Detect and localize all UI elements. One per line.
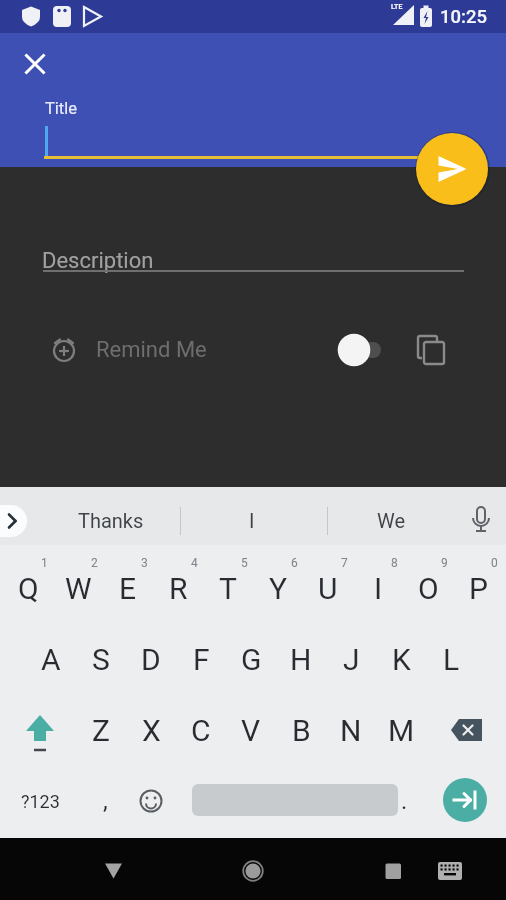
button[interactable]: Q: [3, 553, 53, 623]
button[interactable]: R: [153, 553, 203, 623]
staticText: 3: [141, 556, 148, 570]
staticText: ,: [103, 787, 108, 815]
button[interactable]: N: [326, 695, 376, 765]
staticText: G: [241, 642, 262, 677]
staticText: V: [241, 713, 261, 748]
staticText: Q: [18, 571, 39, 606]
button[interactable]: U: [303, 553, 353, 623]
button[interactable]: K: [376, 624, 426, 694]
staticText: .: [401, 787, 408, 815]
staticText: 8: [391, 556, 398, 570]
button[interactable]: B: [276, 695, 326, 765]
button[interactable]: [438, 695, 494, 765]
staticText: K: [392, 642, 411, 677]
button[interactable]: H: [276, 624, 326, 694]
staticText: X: [142, 713, 161, 748]
button[interactable]: [12, 695, 68, 765]
button[interactable]: [332, 330, 388, 370]
staticText: F: [193, 642, 210, 677]
staticText: 5: [241, 556, 248, 570]
staticText: L: [443, 642, 460, 677]
button[interactable]: [126, 766, 176, 836]
staticText: 9: [441, 556, 448, 570]
button[interactable]: G: [226, 624, 276, 694]
button[interactable]: S: [76, 624, 126, 694]
staticText: 6: [291, 556, 298, 570]
staticText: 7: [341, 556, 348, 570]
button[interactable]: [443, 778, 487, 822]
staticText: B: [292, 713, 311, 748]
button[interactable]: [19, 48, 51, 80]
button[interactable]: C: [176, 695, 226, 765]
staticText: We: [377, 509, 406, 532]
button[interactable]: A: [26, 624, 76, 694]
button[interactable]: [229, 847, 277, 895]
button[interactable]: Thanks: [47, 499, 175, 541]
staticText: W: [65, 571, 92, 606]
staticText: R: [169, 571, 188, 606]
button[interactable]: [89, 847, 137, 895]
button[interactable]: W: [53, 553, 103, 623]
staticText: 0: [491, 556, 498, 570]
staticText: N: [340, 713, 362, 748]
button[interactable]: [44, 156, 464, 159]
button[interactable]: Z: [76, 695, 126, 765]
button[interactable]: O: [403, 553, 453, 623]
button[interactable]: X: [126, 695, 176, 765]
button[interactable]: E: [103, 553, 153, 623]
button[interactable]: D: [126, 624, 176, 694]
button[interactable]: [463, 500, 501, 542]
button[interactable]: L: [426, 624, 476, 694]
staticText: 4: [191, 556, 198, 570]
staticText: Remind Me: [96, 337, 207, 363]
button[interactable]: P: [453, 553, 503, 623]
staticText: H: [290, 642, 312, 677]
button[interactable]: M: [376, 695, 426, 765]
button[interactable]: ?123: [14, 766, 66, 836]
button[interactable]: I: [188, 499, 316, 541]
staticText: ?123: [21, 791, 60, 812]
button[interactable]: [414, 332, 450, 368]
staticText: P: [469, 571, 488, 606]
staticText: LTE: [391, 3, 403, 11]
button[interactable]: J: [326, 624, 376, 694]
staticText: E: [119, 571, 137, 606]
button[interactable]: I: [353, 553, 403, 623]
staticText: Y: [269, 571, 288, 606]
button[interactable]: [416, 133, 488, 205]
button[interactable]: Remind Me: [43, 328, 243, 372]
button[interactable]: [369, 847, 417, 895]
staticText: 2: [91, 556, 98, 570]
staticText: I: [374, 571, 383, 606]
button[interactable]: [430, 851, 470, 891]
button[interactable]: [0, 505, 27, 537]
staticText: Thanks: [78, 509, 144, 532]
button[interactable]: ,: [80, 766, 130, 836]
staticText: J: [343, 642, 360, 677]
staticText: M: [388, 713, 415, 748]
button[interactable]: F: [176, 624, 226, 694]
staticText: A: [41, 642, 61, 677]
staticText: D: [141, 642, 161, 677]
staticText: U: [318, 571, 338, 606]
staticText: Z: [92, 713, 110, 748]
staticText: T: [219, 571, 237, 606]
staticText: Title: [45, 99, 78, 118]
staticText: Description: [42, 248, 154, 274]
button[interactable]: T: [203, 553, 253, 623]
staticText: O: [418, 571, 439, 606]
staticText: 10:25: [440, 6, 487, 28]
staticText: I: [249, 509, 255, 532]
button[interactable]: We: [327, 499, 455, 541]
button[interactable]: .: [379, 766, 429, 836]
button[interactable]: V: [226, 695, 276, 765]
staticText: S: [92, 642, 110, 677]
staticText: 1: [41, 556, 48, 570]
button[interactable]: Y: [253, 553, 303, 623]
staticText: C: [191, 713, 211, 748]
